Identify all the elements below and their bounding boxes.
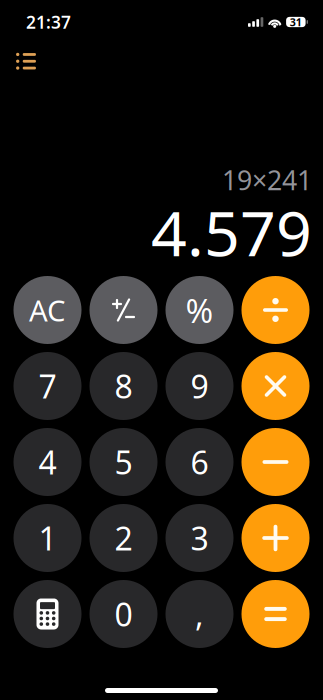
staticText: % xyxy=(185,288,213,332)
button[interactable]: Subtract xyxy=(241,428,309,496)
staticText: 19×241 xyxy=(222,162,312,198)
button[interactable]: 8 xyxy=(89,352,157,420)
button[interactable]: 1 xyxy=(13,504,81,572)
button[interactable]: 2 xyxy=(89,504,157,572)
button[interactable]: History xyxy=(0,45,52,77)
button[interactable]: Calculator xyxy=(13,580,81,648)
button[interactable]: 6 xyxy=(165,428,233,496)
button[interactable]: Add xyxy=(241,504,309,572)
staticText: 0 xyxy=(114,593,132,635)
staticText: , xyxy=(195,593,204,635)
button[interactable]: , xyxy=(165,580,233,648)
button[interactable]: 4 xyxy=(13,428,81,496)
button[interactable]: 7 xyxy=(13,352,81,420)
staticText: 5 xyxy=(114,441,132,483)
staticText: 2 xyxy=(114,517,132,559)
staticText: 7 xyxy=(38,365,56,407)
button[interactable]: 9 xyxy=(165,352,233,420)
button[interactable]: Multiply xyxy=(241,352,309,420)
button[interactable]: Toggle sign xyxy=(89,276,157,344)
button[interactable]: 5 xyxy=(89,428,157,496)
button[interactable]: % xyxy=(165,276,233,344)
staticText: 6 xyxy=(190,441,208,483)
button[interactable]: 3 xyxy=(165,504,233,572)
button[interactable]: Divide xyxy=(241,276,309,344)
button[interactable]: 0 xyxy=(89,580,157,648)
button[interactable]: Equals xyxy=(241,580,309,648)
staticText: 1 xyxy=(38,517,56,559)
staticText: 4 xyxy=(38,441,56,483)
staticText: 4.579 xyxy=(151,190,312,274)
staticText: 8 xyxy=(114,365,132,407)
staticText: 31 xyxy=(290,15,302,29)
staticText: 9 xyxy=(190,365,208,407)
staticText: 21:37 xyxy=(26,10,71,33)
staticText: 3 xyxy=(190,517,208,559)
button[interactable]: AC xyxy=(13,276,81,344)
staticText: AC xyxy=(29,290,66,329)
